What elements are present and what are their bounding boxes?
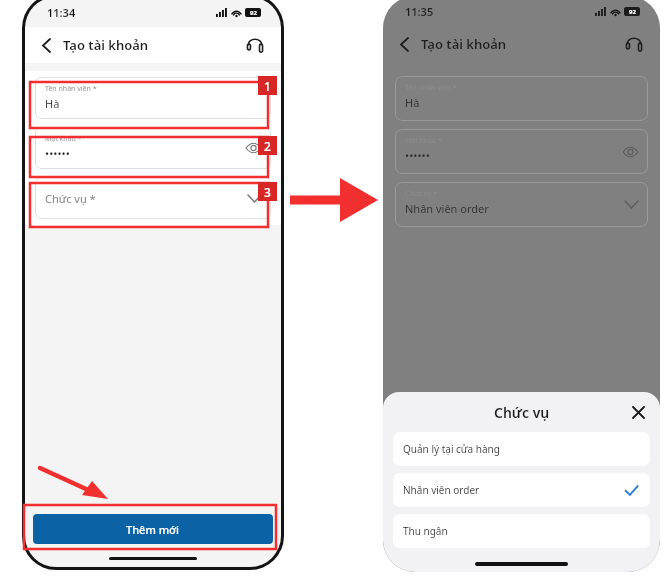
staticText: Nhân viên order xyxy=(405,201,489,216)
staticText: 1 xyxy=(264,78,271,94)
button[interactable]: Tên nhân viên * xyxy=(395,76,648,121)
button[interactable]: Close xyxy=(628,402,648,422)
staticText: Tạo tài khoản xyxy=(421,35,507,53)
button[interactable]: Thu ngân xyxy=(393,514,650,548)
staticText: Thêm mới xyxy=(126,522,180,537)
staticText: Quản lý tại cửa hàng xyxy=(403,442,500,456)
staticText: Mật khẩu * xyxy=(45,134,82,144)
staticText: 3 xyxy=(264,184,271,200)
staticText: Nhân viên order xyxy=(403,483,480,497)
staticText: 2 xyxy=(264,138,271,154)
button[interactable]: Nhân viên order xyxy=(393,473,650,507)
staticText: Chức vụ * xyxy=(45,191,96,206)
button[interactable]: Back xyxy=(393,33,415,55)
staticText: •••••• xyxy=(45,146,70,161)
staticText: Hà xyxy=(405,95,420,110)
button[interactable]: Quản lý tại cửa hàng xyxy=(393,432,650,466)
button[interactable]: Mật khẩu * xyxy=(35,127,271,169)
staticText: Tên nhân viên * xyxy=(45,84,97,94)
staticText: 92 xyxy=(250,9,257,17)
staticText: Thu ngân xyxy=(403,524,448,538)
staticText: Tạo tài khoản xyxy=(63,36,149,54)
button[interactable]: Thêm mới xyxy=(33,514,273,544)
button[interactable]: Support xyxy=(243,33,267,57)
staticText: Hà xyxy=(45,96,60,111)
button[interactable]: Support xyxy=(622,32,646,56)
staticText: •••••• xyxy=(405,148,430,163)
staticText: Chức vụ xyxy=(494,403,550,422)
button[interactable]: Back xyxy=(35,34,57,56)
button[interactable]: Mật khẩu * xyxy=(395,129,648,174)
button[interactable]: Chức vụ * xyxy=(35,177,271,219)
staticText: 11:34 xyxy=(47,5,76,20)
staticText: 92 xyxy=(629,8,636,16)
staticText: 11:35 xyxy=(405,4,434,19)
button[interactable]: Tên nhân viên * xyxy=(35,77,271,119)
button[interactable]: Chức vụ * xyxy=(395,182,648,227)
